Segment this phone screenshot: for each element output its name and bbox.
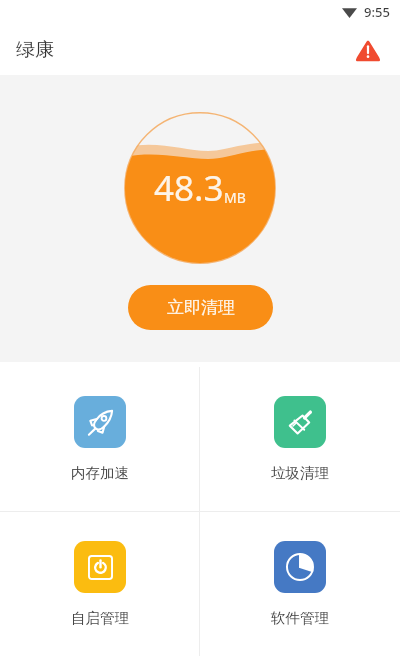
button[interactable]: 自启管理	[0, 512, 199, 656]
staticText: 9:55	[364, 3, 390, 21]
staticText: 48.3	[154, 164, 224, 212]
staticText: MB	[224, 188, 246, 207]
staticText: 内存加速	[71, 464, 129, 482]
button[interactable]: 内存加速	[0, 367, 199, 511]
button[interactable]: 垃圾清理	[200, 367, 400, 511]
staticText: 绿康	[16, 38, 54, 62]
button[interactable]: 立即清理	[128, 285, 273, 330]
staticText: 自启管理	[71, 609, 129, 627]
staticText: 立即清理	[167, 297, 235, 318]
button[interactable]: 软件管理	[200, 512, 400, 656]
staticText: 垃圾清理	[271, 464, 329, 482]
staticText: 软件管理	[271, 609, 329, 627]
button[interactable]: Warning	[353, 35, 383, 65]
